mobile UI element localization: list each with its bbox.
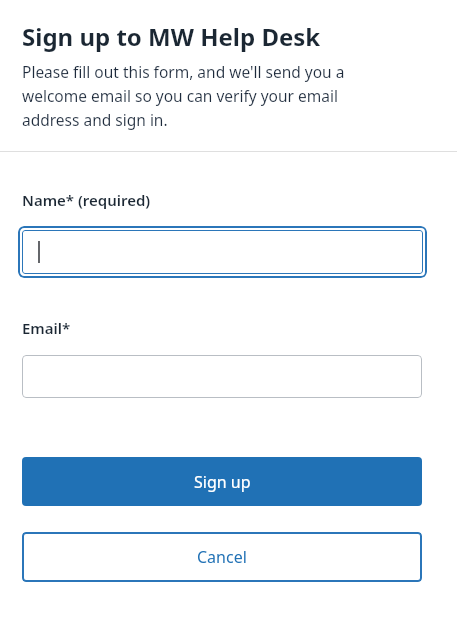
staticText: Email* (22, 318, 71, 338)
button[interactable]: Name input field (22, 230, 423, 274)
staticText: Sign up (194, 471, 251, 493)
button[interactable]: Cancel (22, 532, 422, 582)
staticText: Please fill out this form, and we'll sen… (22, 61, 345, 130)
staticText: Cancel (197, 546, 247, 568)
staticText: Name* (required) (22, 190, 151, 210)
button[interactable] (22, 355, 422, 398)
button[interactable]: Sign up (22, 457, 422, 506)
staticText: Sign up to MW Help Desk (22, 20, 321, 53)
